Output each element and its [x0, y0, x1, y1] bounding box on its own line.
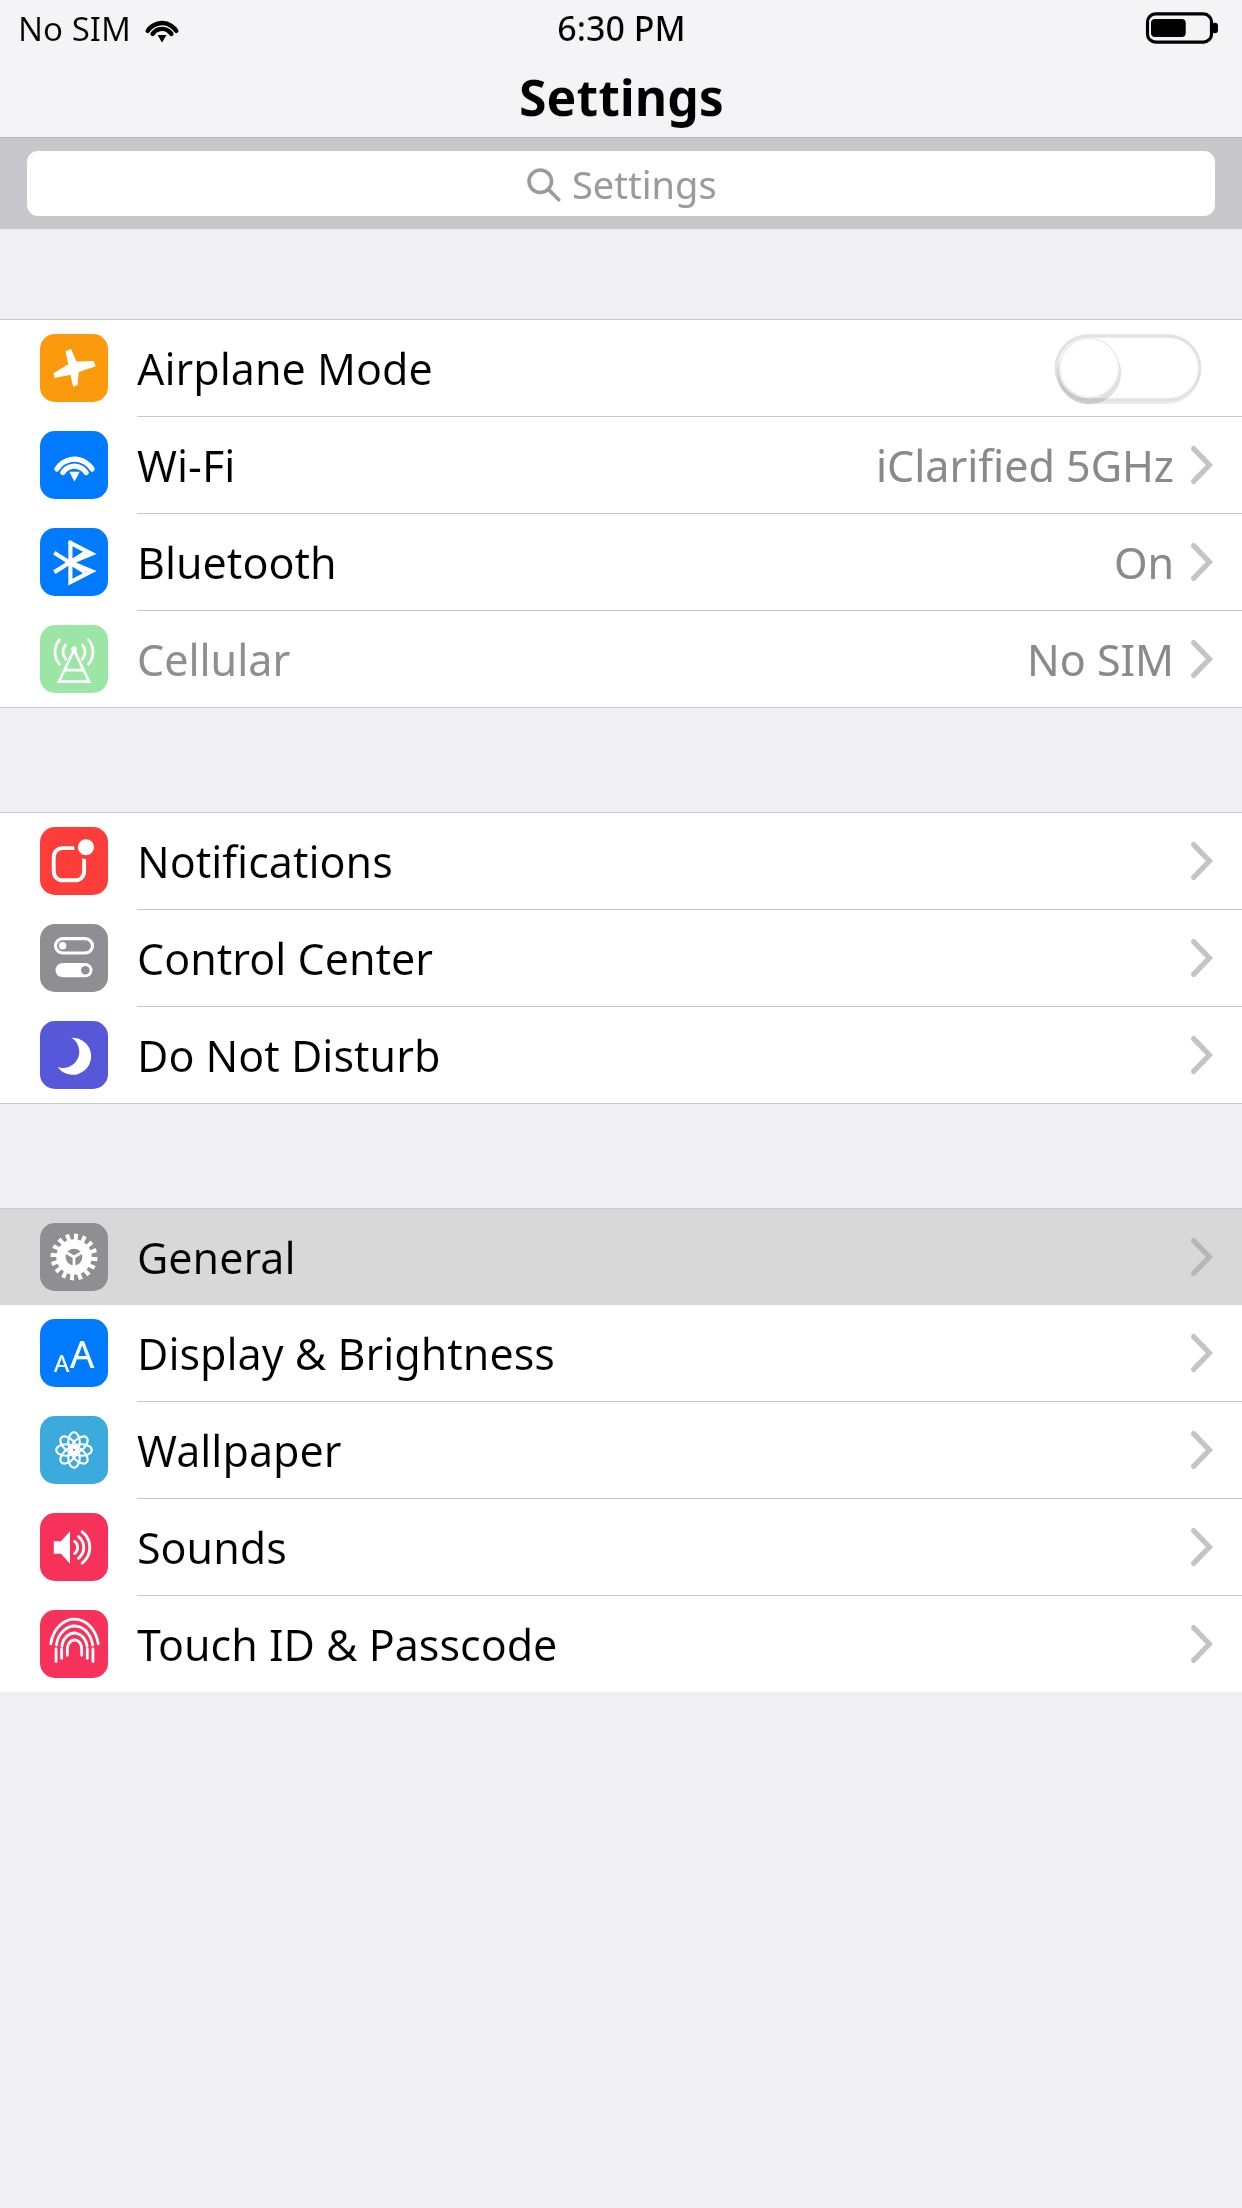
button[interactable]: Settings: [27, 151, 1215, 216]
button[interactable]: Notifications: [0, 813, 1242, 910]
staticText: A: [54, 1346, 70, 1379]
button[interactable]: Do Not Disturb: [0, 1007, 1242, 1103]
staticText: Control Center: [137, 929, 434, 988]
staticText: Cellular: [137, 630, 291, 689]
staticText: Airplane Mode: [137, 339, 433, 398]
button[interactable]: Touch ID & Passcode: [0, 1596, 1242, 1692]
staticText: Do Not Disturb: [137, 1026, 441, 1085]
staticText: Wallpaper: [137, 1421, 342, 1480]
button[interactable]: A: [0, 1305, 1242, 1402]
staticText: Touch ID & Passcode: [137, 1615, 558, 1674]
button[interactable]: Airplane Mode toggle: [1050, 321, 1206, 415]
staticText: Display & Brightness: [137, 1324, 555, 1383]
button[interactable]: Wallpaper: [0, 1402, 1242, 1499]
staticText: General: [137, 1228, 296, 1287]
button[interactable]: Control Center: [0, 910, 1242, 1007]
button[interactable]: Bluetooth: [0, 514, 1242, 611]
button[interactable]: General: [0, 1209, 1242, 1305]
staticText: No SIM: [18, 6, 131, 51]
button[interactable]: Wi-Fi: [0, 417, 1242, 514]
staticText: iClarified 5GHz: [876, 436, 1175, 495]
button[interactable]: Airplane Mode: [0, 320, 1242, 417]
staticText: Sounds: [137, 1518, 287, 1577]
staticText: A: [70, 1327, 95, 1379]
staticText: Bluetooth: [137, 533, 337, 592]
staticText: Wi-Fi: [137, 436, 236, 495]
button[interactable]: Sounds: [0, 1499, 1242, 1596]
staticText: No SIM: [1027, 630, 1175, 689]
staticText: Settings: [519, 63, 724, 131]
staticText: On: [1114, 533, 1175, 592]
staticText: Settings: [572, 158, 717, 210]
button[interactable]: Cellular: [0, 611, 1242, 707]
staticText: Notifications: [137, 832, 393, 891]
staticText: 6:30 PM: [557, 5, 686, 51]
